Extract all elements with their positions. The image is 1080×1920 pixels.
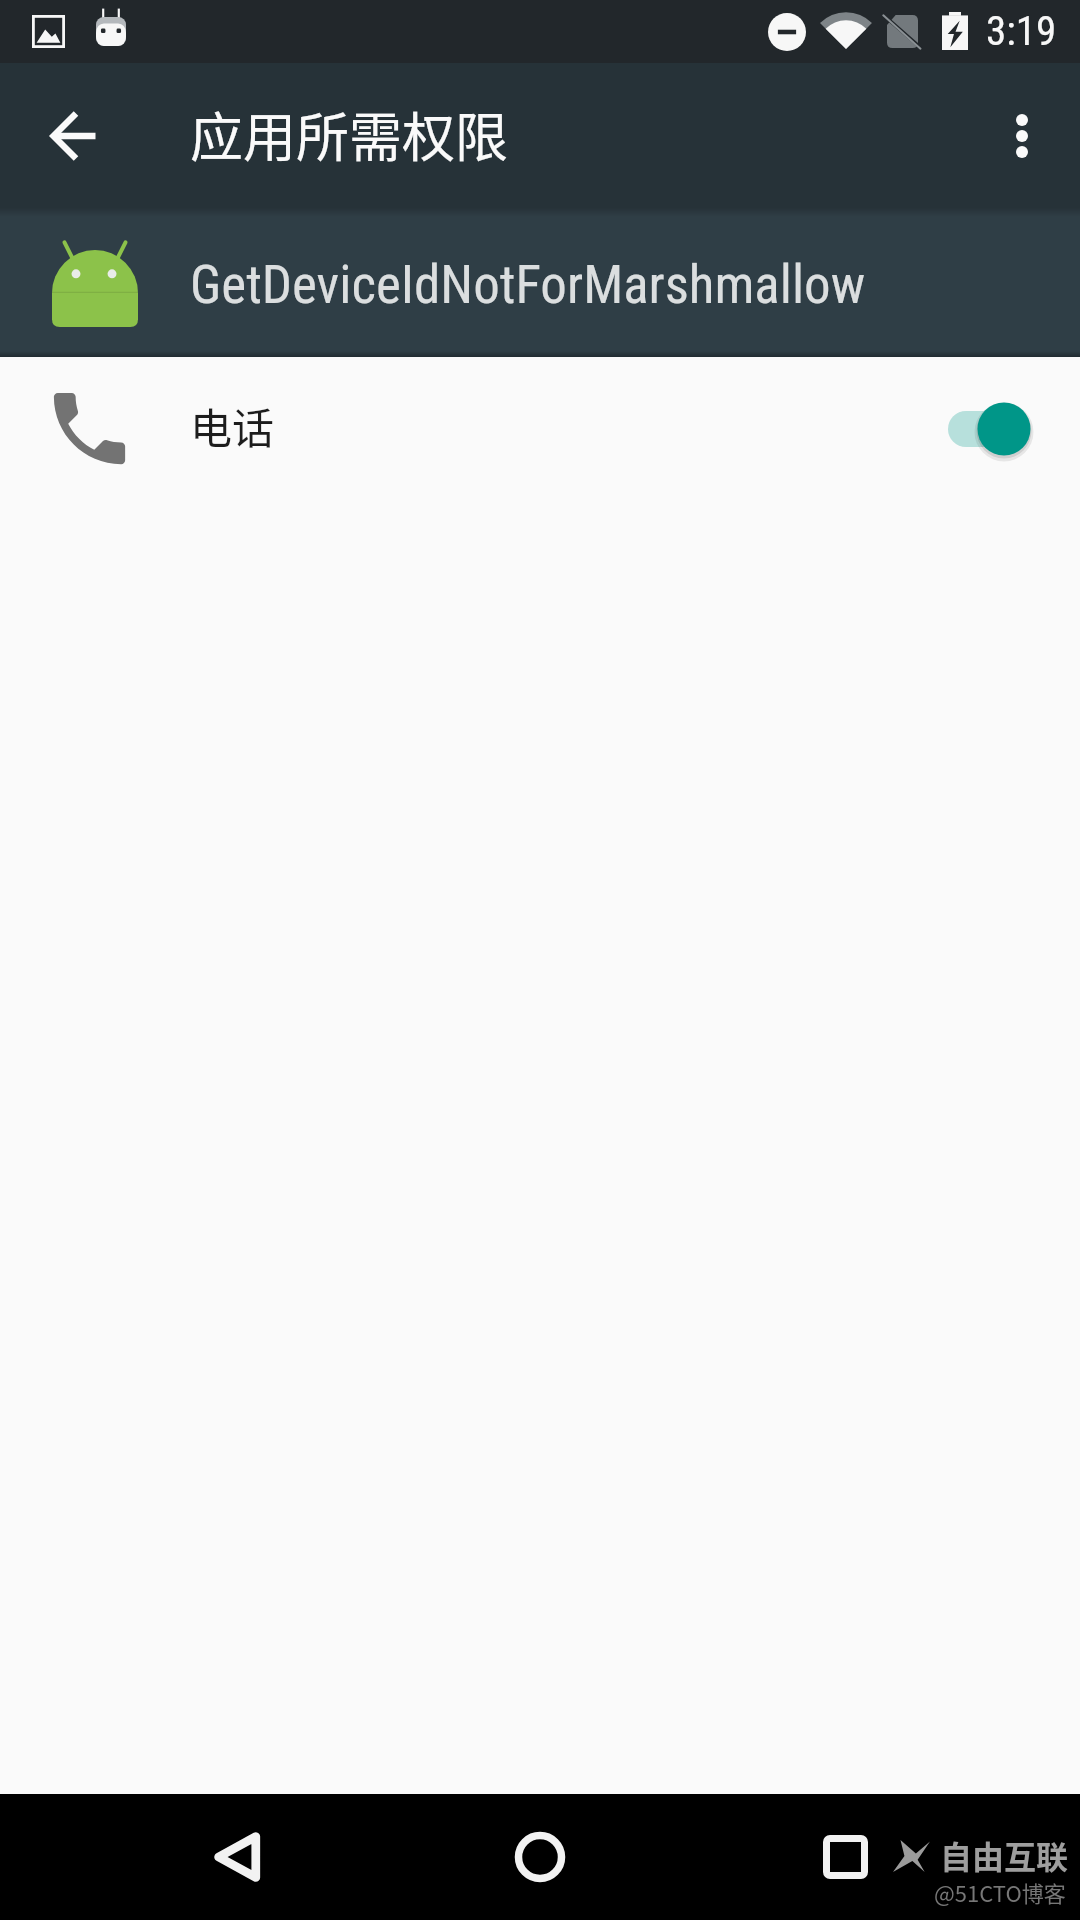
button[interactable]: 电话 bbox=[0, 357, 1080, 500]
staticText: GetDeviceIdNotForMarshmallow bbox=[190, 254, 866, 316]
staticText: 3:19 bbox=[986, 7, 1057, 55]
staticText: 自由互联 bbox=[940, 1832, 1069, 1878]
staticText: @51CTO博客 bbox=[934, 1876, 1066, 1908]
button[interactable]: More options bbox=[964, 78, 1080, 194]
staticText: 应用所需权限 bbox=[190, 96, 508, 173]
button[interactable]: Back bbox=[1, 64, 145, 208]
button[interactable]: Back bbox=[176, 1794, 296, 1920]
staticText: 电话 bbox=[190, 395, 275, 456]
button[interactable]: Recents bbox=[785, 1794, 905, 1920]
button[interactable]: GetDeviceIdNotForMarshmallow bbox=[0, 208, 1080, 357]
button[interactable]: Home bbox=[480, 1794, 600, 1920]
button[interactable]: Toggle phone permission bbox=[948, 399, 1036, 459]
